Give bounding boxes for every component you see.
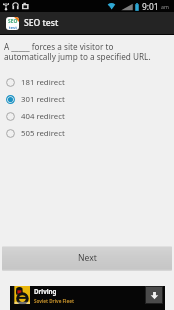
button[interactable]: Next <box>2 246 172 271</box>
staticText: test <box>9 25 17 30</box>
button[interactable]: 181 redirect <box>0 74 174 91</box>
staticText: A _____ forces a site visitor to automat… <box>4 41 156 62</box>
staticText: Driving <box>34 287 57 295</box>
staticText: 301 redirect <box>21 94 65 105</box>
staticText: 505 redirect <box>21 128 65 139</box>
staticText: Soviet Drive Fleet <box>34 298 74 304</box>
staticText: SEO <box>8 18 18 25</box>
button[interactable]: 505 redirect <box>0 125 174 142</box>
button[interactable]: 404 redirect <box>0 108 174 125</box>
staticText: Next <box>78 252 97 264</box>
staticText: 181 redirect <box>21 77 65 88</box>
staticText: am <box>161 3 169 10</box>
staticText: SEO test <box>24 17 59 29</box>
staticText: 404 redirect <box>21 111 65 122</box>
button[interactable]: Driving <box>10 286 165 310</box>
button[interactable]: Install app <box>146 287 162 303</box>
staticText: 9:01 <box>142 1 159 12</box>
button[interactable]: 301 redirect <box>0 91 174 108</box>
